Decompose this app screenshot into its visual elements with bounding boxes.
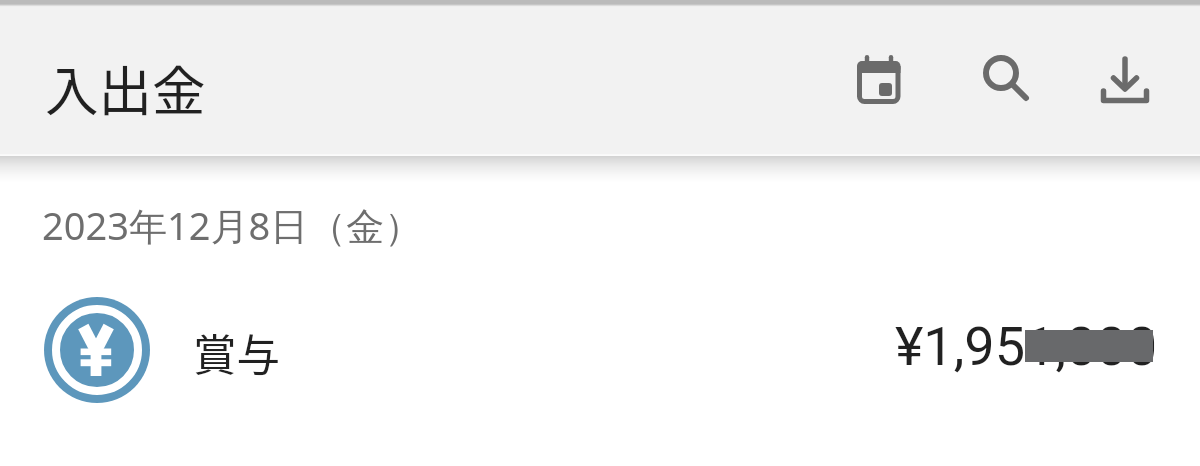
staticText: 賞与 <box>193 321 280 384</box>
button[interactable]: Calendar <box>831 32 927 128</box>
button[interactable]: 賞与 <box>0 275 1200 425</box>
button[interactable]: Search <box>960 32 1056 128</box>
staticText: 入出金 <box>45 49 206 126</box>
staticText: ¥1,951,000 <box>895 315 1158 378</box>
staticText: 2023年12月8日（金） <box>42 199 423 251</box>
button[interactable]: Download <box>1077 32 1173 128</box>
